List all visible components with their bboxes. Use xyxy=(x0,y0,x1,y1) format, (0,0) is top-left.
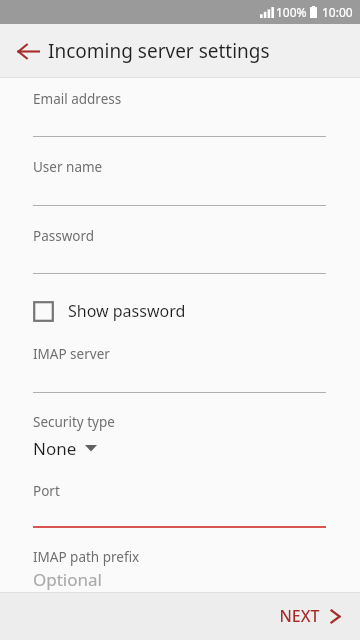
button[interactable]: NEXT xyxy=(261,592,360,640)
staticText: Security type xyxy=(33,413,115,431)
staticText: IMAP path prefix xyxy=(33,548,140,566)
button[interactable]: None xyxy=(33,434,97,462)
staticText: Show password xyxy=(68,300,186,322)
staticText: User name xyxy=(33,158,103,176)
staticText: None xyxy=(33,437,77,460)
staticText: Email address xyxy=(33,90,122,108)
staticText: Incoming server settings xyxy=(48,38,270,64)
staticText: Password xyxy=(33,227,95,245)
button[interactable]: Show password xyxy=(33,294,186,328)
staticText: Optional xyxy=(33,568,102,591)
staticText: IMAP server xyxy=(33,345,110,363)
staticText: Port xyxy=(33,482,60,500)
staticText: 100% xyxy=(276,4,307,20)
button[interactable]: Back xyxy=(6,29,50,73)
staticText: NEXT xyxy=(279,605,320,627)
staticText: 10:00 xyxy=(322,4,353,20)
